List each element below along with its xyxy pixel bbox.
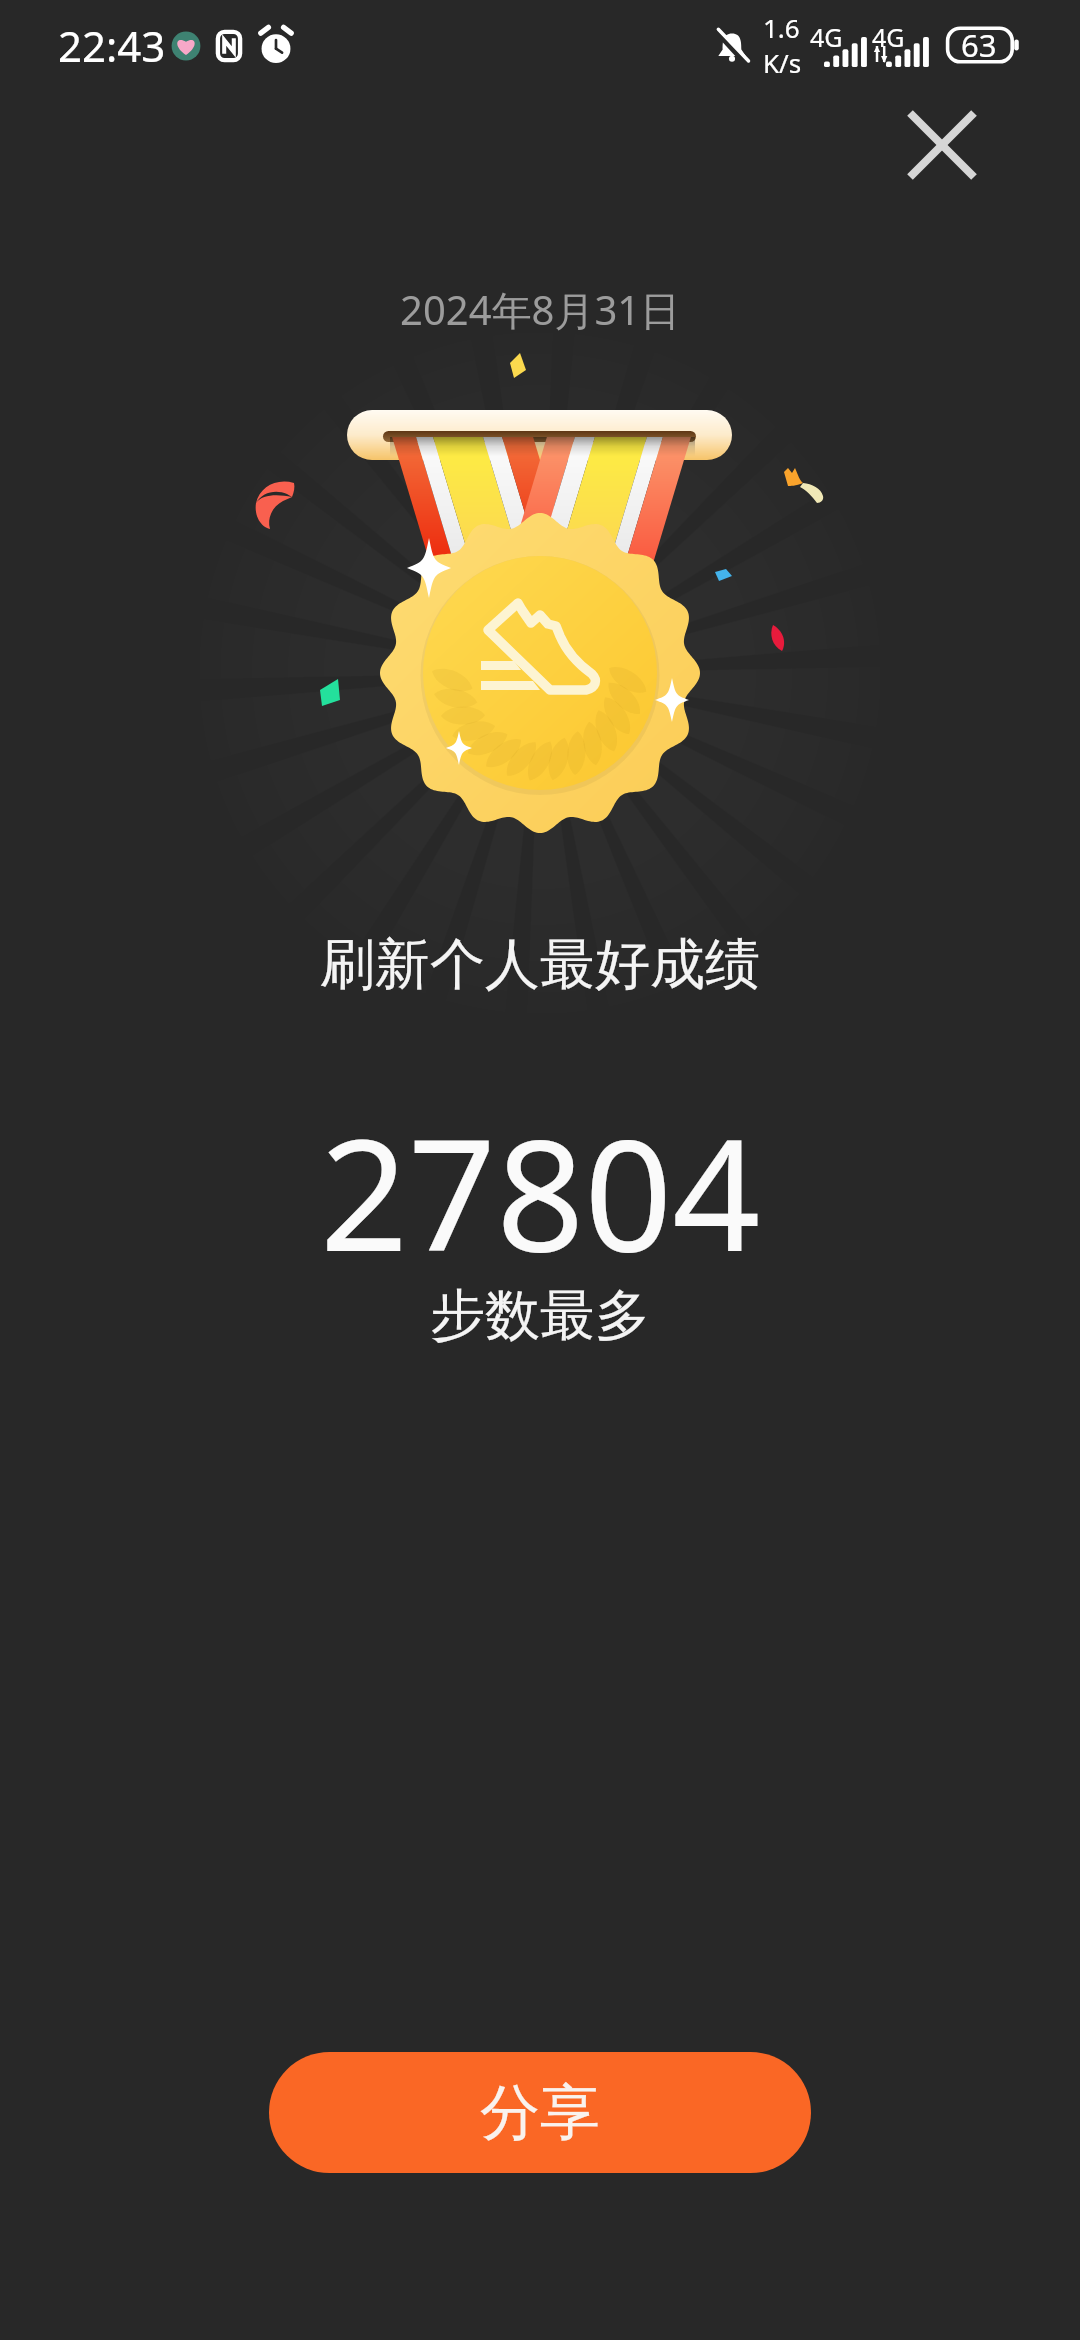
staticText: 4G bbox=[810, 20, 843, 54]
staticText: 步数最多 bbox=[430, 1281, 650, 1350]
button[interactable]: Close bbox=[895, 98, 989, 192]
button[interactable]: 分享 bbox=[269, 2052, 811, 2173]
staticText: 2024年8月31日 bbox=[400, 282, 681, 337]
staticText: K/s bbox=[763, 45, 802, 80]
staticText: 27804 bbox=[320, 1086, 761, 1296]
staticText: 4G bbox=[872, 20, 905, 54]
staticText: 1.6 bbox=[763, 10, 800, 45]
staticText: 刷新个人最好成绩 bbox=[320, 930, 760, 999]
staticText: 分享 bbox=[480, 2075, 600, 2151]
staticText: 22:43 bbox=[58, 17, 166, 74]
staticText: 63 bbox=[961, 24, 997, 66]
